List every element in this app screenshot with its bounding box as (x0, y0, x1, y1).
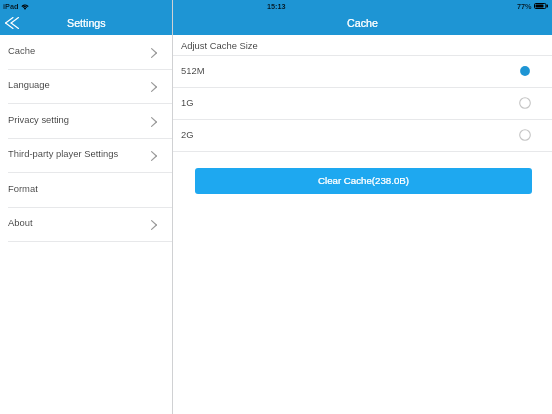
button[interactable]: Format (0, 173, 172, 208)
staticText: Cache (347, 17, 378, 29)
staticText: 77% (517, 2, 532, 10)
staticText: 2G (181, 129, 194, 140)
button[interactable]: 1G (173, 88, 552, 120)
staticText: 15:13 (267, 2, 286, 10)
staticText: Third-party player Settings (8, 148, 119, 159)
staticText: Language (8, 79, 50, 90)
staticText: Clear Cache(238.0B) (318, 175, 410, 186)
button[interactable]: Clear Cache(238.0B) (195, 168, 532, 194)
staticText: Format (8, 183, 38, 194)
button[interactable]: Cache (0, 35, 172, 70)
staticText: Settings (67, 17, 106, 29)
button[interactable]: Privacy setting (0, 104, 172, 139)
staticText: 512M (181, 65, 205, 76)
button[interactable]: 512M (173, 56, 552, 88)
staticText: About (8, 217, 33, 228)
button[interactable]: 2G (173, 120, 552, 152)
button[interactable]: About (0, 207, 172, 242)
staticText: Cache (8, 45, 36, 56)
button[interactable]: Back (0, 10, 26, 36)
button[interactable]: Third-party player Settings (0, 138, 172, 173)
staticText: 1G (181, 97, 194, 108)
staticText: Adjust Cache Size (181, 40, 258, 51)
button[interactable]: Language (0, 69, 172, 104)
staticText: iPad (3, 2, 19, 10)
staticText: Privacy setting (8, 114, 70, 125)
